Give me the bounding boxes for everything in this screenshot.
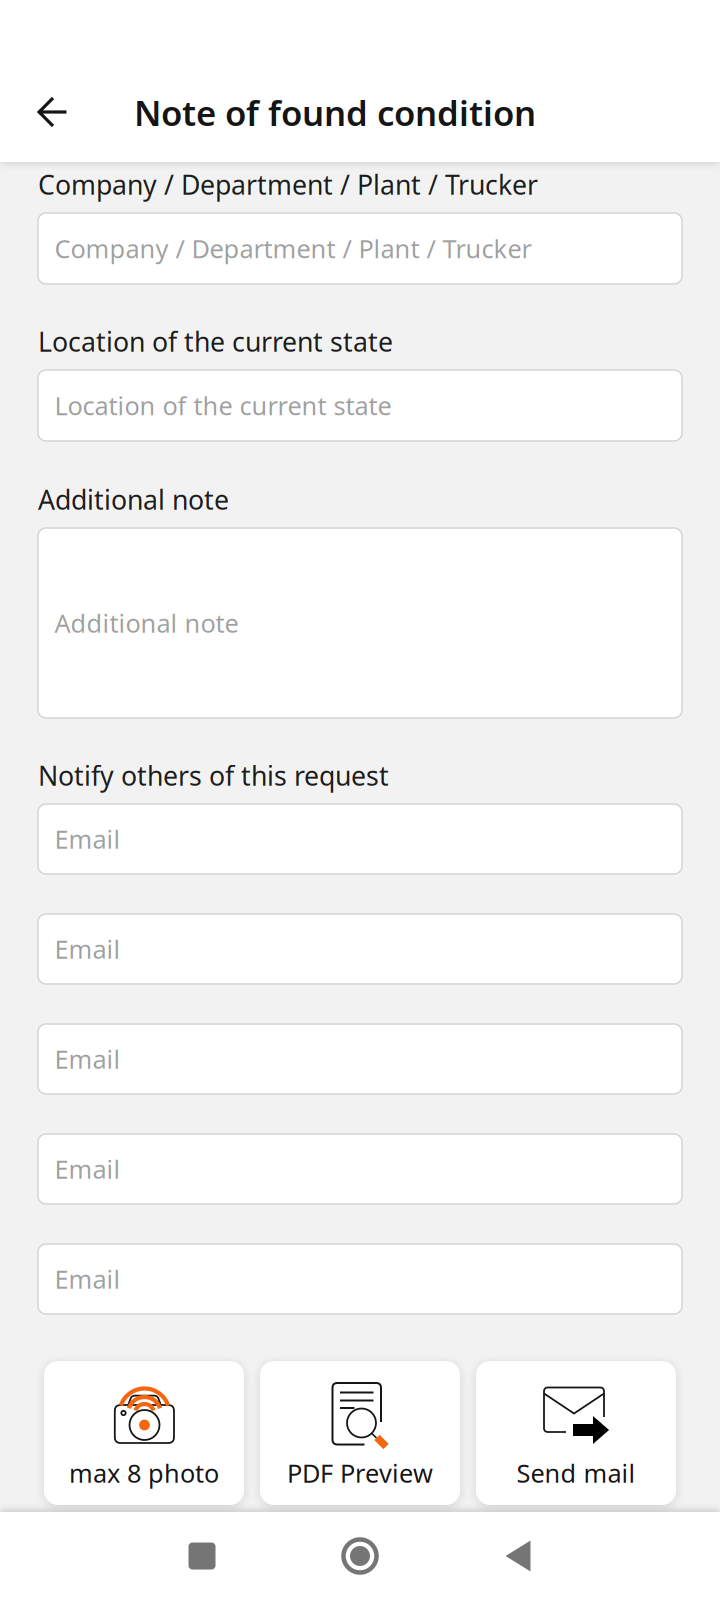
staticText: Company / Department / Plant / Trucker bbox=[54, 232, 531, 265]
staticText: Location of the current state bbox=[38, 324, 393, 359]
staticText: max 8 photo bbox=[69, 1456, 219, 1490]
button[interactable]: Email bbox=[38, 1244, 682, 1314]
staticText: Email bbox=[54, 822, 120, 856]
button[interactable]: Email bbox=[38, 804, 682, 874]
staticText: Location of the current state bbox=[54, 389, 391, 422]
staticText: PDF Preview bbox=[287, 1456, 433, 1490]
button[interactable]: max 8 photo bbox=[44, 1361, 244, 1505]
button[interactable]: Send mail bbox=[476, 1361, 676, 1505]
button[interactable]: PDF Preview bbox=[260, 1361, 460, 1505]
button[interactable]: Home bbox=[315, 1512, 405, 1600]
staticText: Email bbox=[54, 932, 120, 966]
staticText: Note of found condition bbox=[134, 89, 536, 135]
staticText: Email bbox=[54, 1042, 120, 1076]
staticText: Email bbox=[54, 1152, 120, 1186]
staticText: Additional note bbox=[54, 606, 238, 640]
staticText: Additional note bbox=[38, 482, 229, 517]
staticText: Email bbox=[54, 1262, 120, 1296]
button[interactable]: Back bbox=[473, 1512, 563, 1600]
button[interactable]: Email bbox=[38, 1134, 682, 1204]
button[interactable]: Email bbox=[38, 1024, 682, 1094]
button[interactable]: Additional note bbox=[38, 528, 682, 718]
button[interactable]: Email bbox=[38, 914, 682, 984]
staticText: Notify others of this request bbox=[38, 758, 389, 793]
button[interactable]: Company / Department / Plant / Trucker bbox=[38, 213, 682, 284]
button[interactable]: Recent apps bbox=[157, 1512, 247, 1600]
staticText: Company / Department / Plant / Trucker bbox=[38, 167, 538, 202]
button[interactable]: Location of the current state bbox=[38, 370, 682, 441]
staticText: Send mail bbox=[516, 1456, 635, 1490]
button[interactable]: Back bbox=[17, 76, 89, 148]
